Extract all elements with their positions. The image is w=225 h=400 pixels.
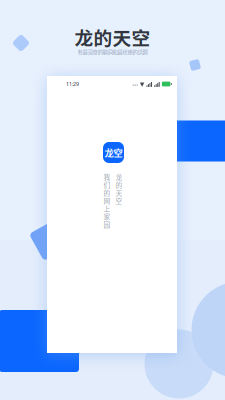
staticText: 的 [103, 188, 110, 198]
staticText: 龙空 [104, 146, 122, 159]
staticText: 网 [103, 196, 110, 205]
staticText: 有最深度的脑洞和最优质的话题 [77, 48, 147, 56]
staticText: 家 [103, 212, 110, 221]
staticText: 龙的天空 [74, 23, 150, 50]
staticText: 我 [103, 172, 110, 182]
staticText: 们 [103, 180, 110, 190]
staticText: 上 [103, 204, 110, 213]
staticText: 天 [115, 188, 122, 198]
staticText: 龙 [115, 172, 122, 182]
staticText: 11:29 [66, 80, 79, 88]
staticText: 的 [115, 180, 122, 190]
staticText: 空 [115, 196, 122, 205]
staticText: 园 [103, 219, 110, 229]
